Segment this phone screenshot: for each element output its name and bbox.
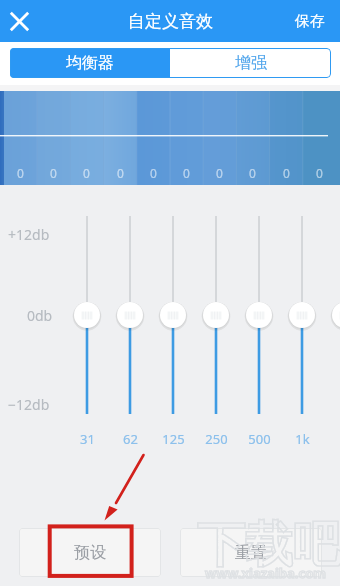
staticText: 0 bbox=[150, 165, 157, 181]
staticText: 500 bbox=[248, 430, 271, 448]
staticText: 0 bbox=[117, 165, 124, 181]
staticText: 预设 bbox=[74, 543, 106, 563]
staticText: 125 bbox=[162, 430, 185, 448]
staticText: 均衡器 bbox=[66, 53, 114, 73]
button[interactable]: 增强 bbox=[170, 48, 331, 78]
button[interactable]: 预设 bbox=[19, 528, 161, 577]
staticText: 1k bbox=[295, 430, 310, 448]
staticText: 0db bbox=[27, 306, 53, 325]
staticText: 重置 bbox=[235, 543, 267, 563]
staticText: 0 bbox=[183, 165, 190, 181]
staticText: 0 bbox=[283, 165, 290, 181]
button[interactable]: 保存 bbox=[281, 2, 340, 41]
staticText: 0 bbox=[249, 165, 256, 181]
button[interactable]: Close bbox=[0, 2, 38, 40]
staticText: 0 bbox=[50, 165, 57, 181]
staticText: 0 bbox=[17, 165, 24, 181]
staticText: 31 bbox=[80, 430, 95, 448]
staticText: +12db bbox=[8, 225, 50, 244]
staticText: 250 bbox=[205, 430, 228, 448]
button[interactable]: 均衡器 bbox=[10, 48, 170, 78]
staticText: 0 bbox=[83, 165, 90, 181]
staticText: www.xiazaiba.com bbox=[205, 564, 326, 582]
staticText: 保存 bbox=[295, 12, 325, 31]
staticText: 0 bbox=[316, 165, 323, 181]
button[interactable]: 重置 bbox=[180, 528, 322, 577]
staticText: 0 bbox=[216, 165, 223, 181]
staticText: 增强 bbox=[235, 53, 267, 73]
staticText: 自定义音效 bbox=[128, 11, 213, 32]
staticText: 下载吧 bbox=[197, 515, 340, 575]
staticText: 62 bbox=[123, 430, 138, 448]
staticText: −12db bbox=[8, 395, 50, 414]
